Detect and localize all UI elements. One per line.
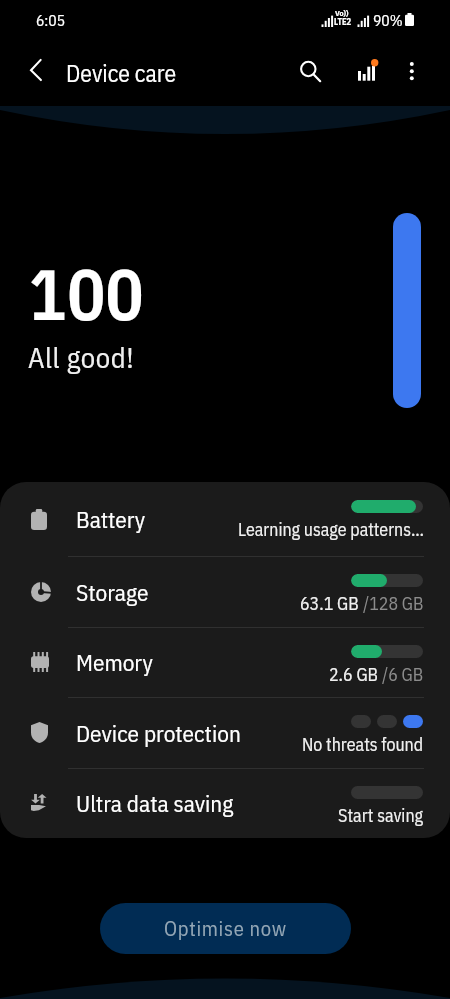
staticText: Battery	[76, 504, 146, 534]
staticText: Start saving	[338, 804, 424, 827]
staticText: 63.1 GB	[300, 592, 363, 615]
staticText: All good!	[28, 339, 135, 376]
button[interactable]: Device protection	[0, 697, 450, 768]
button[interactable]: Search	[285, 46, 331, 92]
staticText: Ultra data saving	[76, 788, 234, 818]
staticText: Learning usage patterns…	[238, 518, 424, 541]
staticText: 6:05	[36, 10, 66, 30]
staticText: Device care	[66, 58, 177, 89]
staticText: Storage	[76, 577, 149, 607]
button[interactable]: Memory	[0, 627, 450, 697]
staticText: 2.6 GB	[329, 663, 382, 686]
staticText: 100	[29, 248, 144, 340]
button[interactable]: Diagnostics	[344, 46, 390, 92]
staticText: /6 GB	[382, 663, 424, 686]
staticText: /128 GB	[363, 592, 424, 615]
staticText: Device protection	[76, 718, 241, 748]
staticText: Optimise now	[164, 915, 287, 942]
button[interactable]: Battery	[0, 482, 450, 556]
button[interactable]: Storage	[0, 556, 450, 627]
button[interactable]: More options	[389, 46, 435, 92]
button[interactable]: Ultra data saving	[0, 768, 450, 838]
button[interactable]: Navigate up	[15, 48, 61, 94]
staticText: Memory	[76, 647, 153, 677]
staticText: LTE2	[334, 16, 352, 27]
staticText: Vo))	[335, 8, 349, 18]
button[interactable]: Optimise now	[100, 903, 351, 954]
staticText: No threats found	[302, 733, 424, 756]
staticText: 90%	[373, 10, 403, 30]
